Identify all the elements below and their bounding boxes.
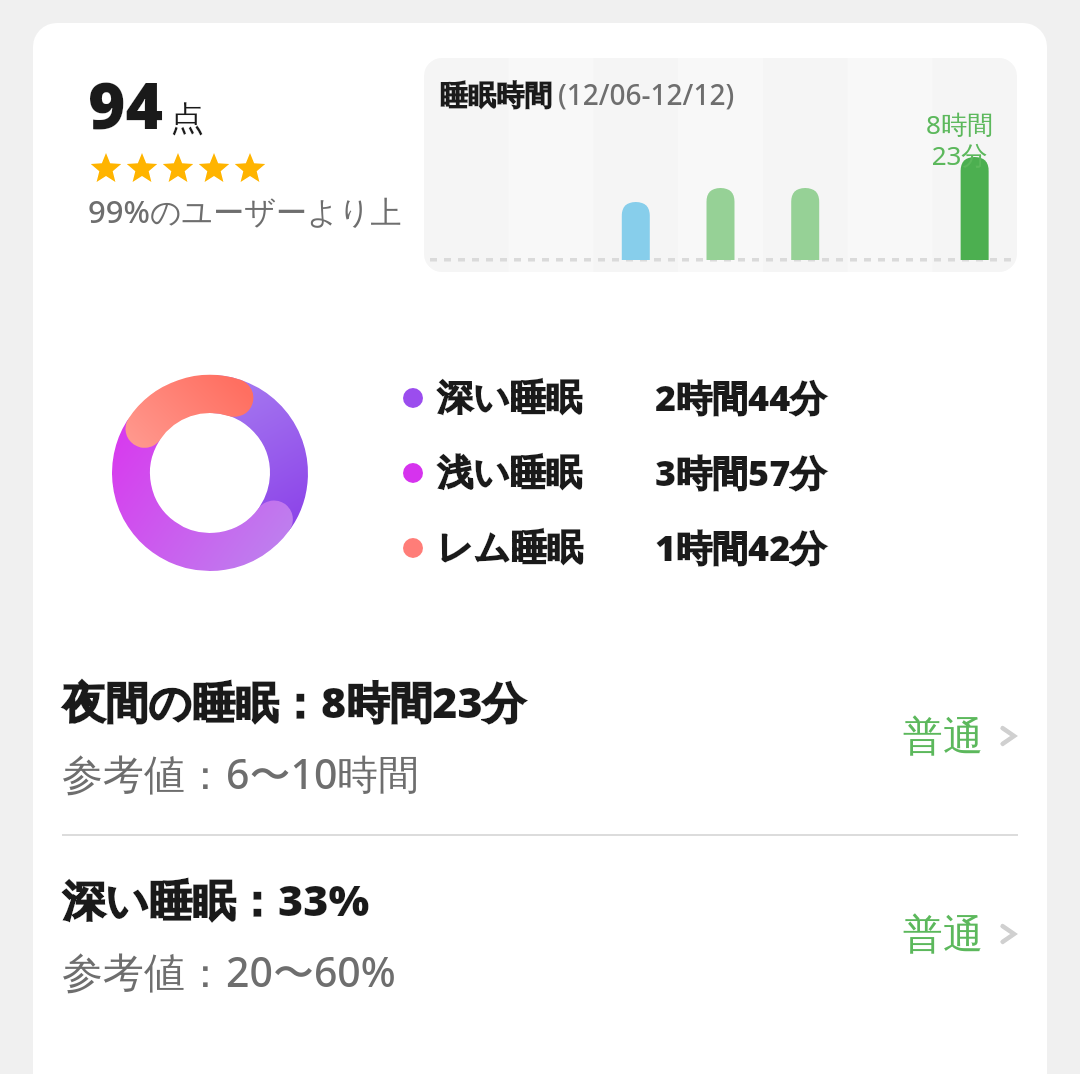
button[interactable]: レム睡眠 xyxy=(403,523,827,572)
staticText: 深い睡眠：33% xyxy=(62,870,370,929)
staticText: (12/06-12/12) xyxy=(558,75,735,113)
staticText: 点 xyxy=(170,97,204,140)
other: 詳細を見る xyxy=(993,919,1023,949)
staticText: 1時間42分 xyxy=(655,523,827,572)
staticText: 94 xyxy=(88,61,164,148)
staticText: 8時間 23分 xyxy=(926,106,993,172)
staticText: 深い睡眠 xyxy=(437,375,582,420)
other: 詳細を見る xyxy=(993,721,1023,751)
staticText: 99%のユーザーより上 xyxy=(88,190,402,232)
staticText: 参考値：20〜60% xyxy=(62,943,396,999)
button[interactable]: 浅い睡眠 xyxy=(403,448,827,497)
button[interactable]: 深い睡眠 xyxy=(403,373,827,422)
staticText: 参考値：6〜10時間 xyxy=(62,745,420,801)
staticText: 普通 xyxy=(903,909,983,959)
button[interactable]: 夜間の睡眠：8時間23分 xyxy=(33,638,1047,834)
staticText: 3時間57分 xyxy=(655,448,827,497)
staticText: 睡眠時間 xyxy=(440,78,552,113)
staticText: 夜間の睡眠：8時間23分 xyxy=(62,672,526,731)
staticText: 普通 xyxy=(903,711,983,761)
staticText: 浅い睡眠 xyxy=(437,450,582,495)
staticText: レム睡眠 xyxy=(437,525,583,570)
staticText: 2時間44分 xyxy=(655,373,827,422)
button[interactable]: 深い睡眠：33% xyxy=(33,836,1047,1032)
